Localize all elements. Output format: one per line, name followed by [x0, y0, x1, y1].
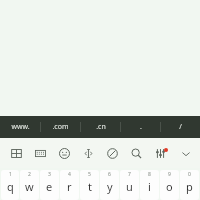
- staticText: 2: [28, 171, 31, 178]
- staticText: 8: [148, 171, 151, 178]
- button[interactable]: www.: [0, 116, 40, 138]
- button[interactable]: Clipboard: [8, 145, 25, 162]
- staticText: i: [148, 179, 151, 194]
- button[interactable]: 0: [180, 170, 199, 200]
- button[interactable]: Search: [128, 145, 145, 162]
- button[interactable]: 7: [120, 170, 139, 200]
- staticText: q: [7, 179, 14, 194]
- button[interactable]: .: [121, 116, 160, 138]
- button[interactable]: 2: [20, 170, 39, 200]
- staticText: .cn: [96, 122, 106, 132]
- button[interactable]: 1: [1, 170, 19, 200]
- button[interactable]: 8: [140, 170, 159, 200]
- staticText: w: [25, 179, 34, 194]
- button[interactable]: Emoji: [56, 145, 73, 162]
- staticText: 1: [9, 171, 12, 178]
- staticText: 7: [128, 171, 131, 178]
- staticText: 9: [168, 171, 171, 178]
- button[interactable]: 6: [100, 170, 119, 200]
- button[interactable]: 4: [60, 170, 79, 200]
- button[interactable]: Stickers: [104, 145, 121, 162]
- staticText: u: [126, 179, 133, 194]
- button[interactable]: 3: [40, 170, 59, 200]
- staticText: 0: [188, 171, 191, 178]
- button[interactable]: 5: [80, 170, 99, 200]
- button[interactable]: .com: [41, 116, 80, 138]
- staticText: y: [107, 179, 113, 194]
- button[interactable]: /: [161, 116, 200, 138]
- staticText: 6: [108, 171, 111, 178]
- button[interactable]: Settings: [152, 145, 169, 162]
- button[interactable]: Hide keyboard: [177, 145, 194, 162]
- staticText: o: [166, 179, 173, 194]
- staticText: e: [46, 179, 53, 194]
- staticText: www.: [11, 122, 30, 132]
- staticText: t: [88, 179, 92, 194]
- button[interactable]: 9: [160, 170, 179, 200]
- button[interactable]: .cn: [81, 116, 120, 138]
- staticText: 3: [48, 171, 51, 178]
- staticText: p: [186, 179, 193, 194]
- button[interactable]: Keyboard layout: [32, 145, 49, 162]
- staticText: .: [140, 122, 142, 132]
- staticText: 4: [68, 171, 71, 178]
- staticText: 5: [88, 171, 91, 178]
- staticText: .com: [52, 122, 69, 132]
- staticText: /: [179, 122, 182, 132]
- button[interactable]: Move cursor: [80, 145, 97, 162]
- staticText: r: [67, 179, 72, 194]
